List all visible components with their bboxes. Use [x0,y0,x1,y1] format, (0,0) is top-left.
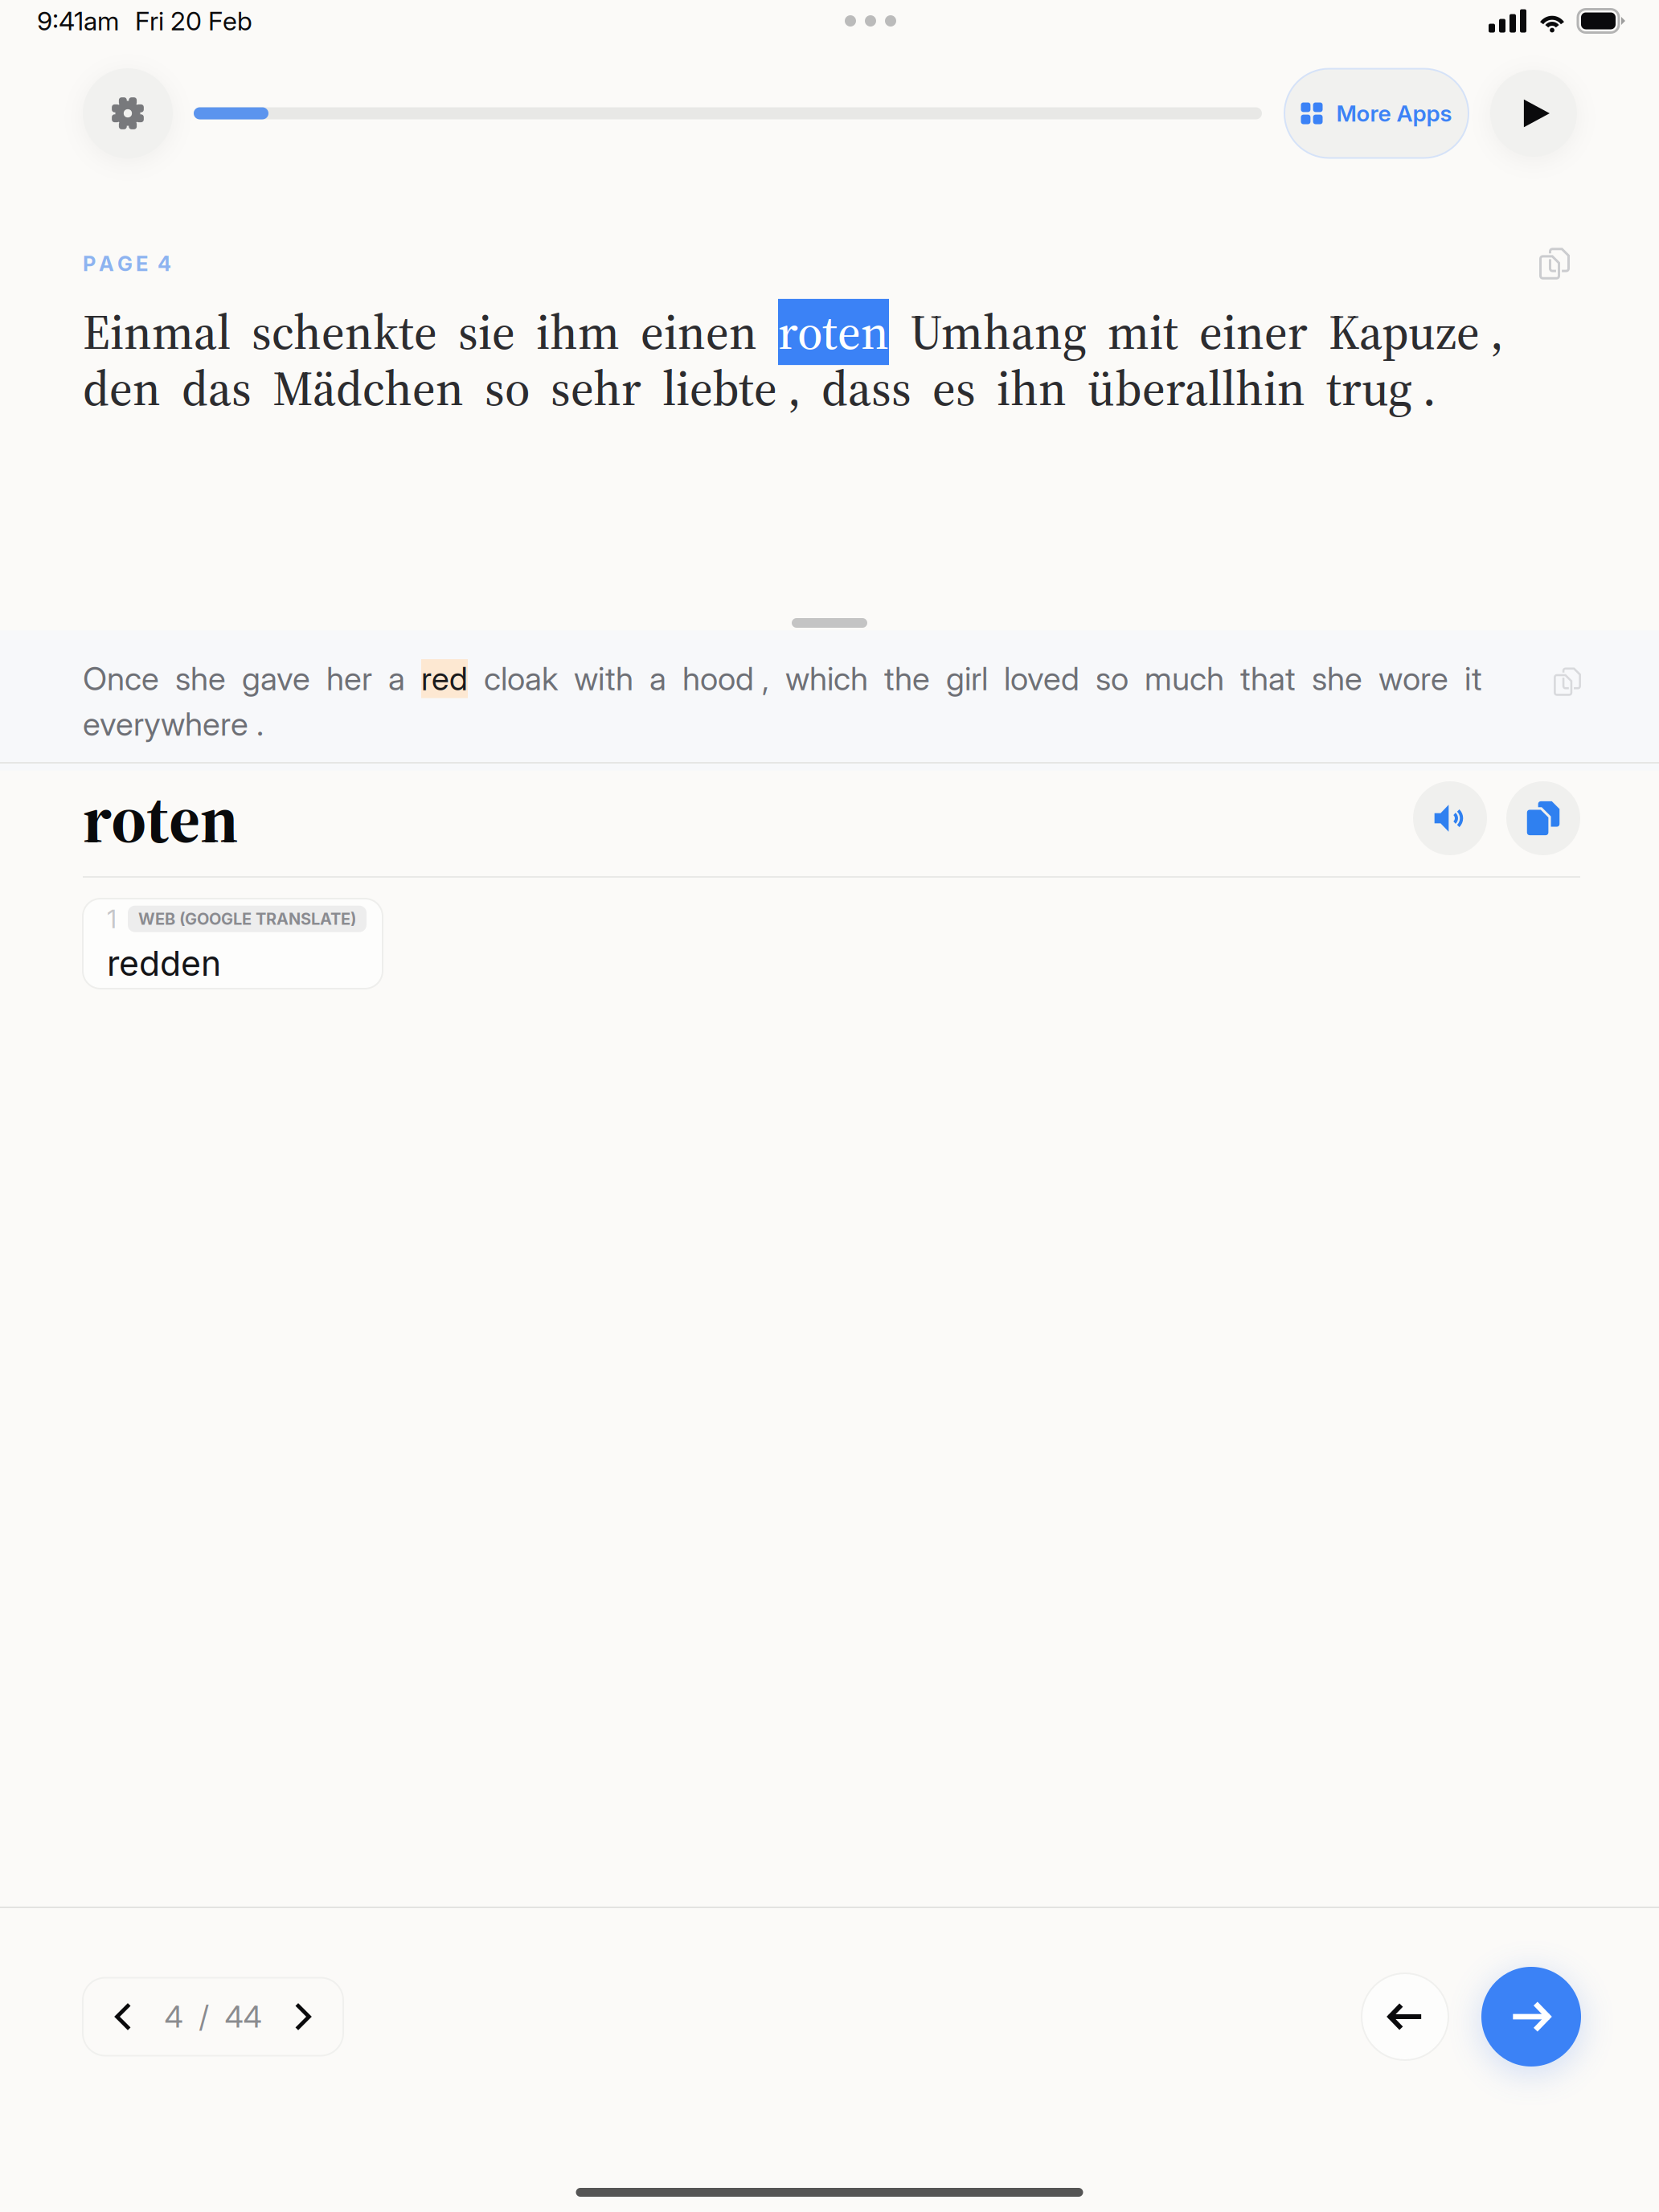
button[interactable]: Play [1490,70,1577,157]
button[interactable]: Copy word [1506,781,1580,855]
staticText: Fri 20 Feb [135,5,252,36]
button[interactable]: Previous page [94,1978,153,2056]
staticText: Once she gave her a red cloak with a hoo… [83,659,1482,698]
staticText: Einmal schenkte sie ihm einen roten Umha… [83,299,1503,365]
staticText: More Apps [1336,100,1452,127]
button[interactable]: Next page [273,1978,332,2056]
staticText: 1 [107,903,117,934]
button[interactable]: Copy source sentence [1532,241,1577,286]
staticText: den das Mädchen so sehr liebte , dass es… [83,355,1436,421]
staticText: roten [83,772,239,865]
staticText: P A G E 4 [83,251,171,276]
button[interactable]: Next [1481,1967,1581,2067]
staticText: redden [107,942,221,984]
staticText: WEB (GOOGLE TRANSLATE) [138,909,356,929]
button[interactable]: More Apps [1284,69,1469,158]
button[interactable]: Back [1362,1973,1448,2060]
button[interactable]: Settings [83,68,173,158]
staticText: 4 / 44 [164,1999,262,2035]
button[interactable]: Copy translation [1548,662,1587,701]
button[interactable]: Pronounce [1413,781,1487,855]
staticText: 9:41am [37,5,119,36]
staticText: everywhere . [83,705,264,743]
